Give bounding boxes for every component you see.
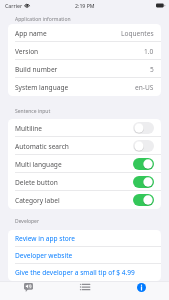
staticText: Developer	[15, 218, 40, 225]
button[interactable]	[133, 122, 154, 134]
button[interactable]	[133, 194, 154, 206]
staticText: Carrier	[5, 2, 23, 9]
button[interactable]	[133, 158, 154, 170]
staticText: 5	[150, 65, 154, 74]
staticText: System language	[15, 83, 69, 92]
button[interactable]: Version	[8, 42, 161, 60]
staticText: Category label	[15, 196, 60, 205]
staticText: Sentence input	[15, 108, 51, 115]
staticText: Developer website	[15, 251, 73, 260]
button[interactable]	[133, 176, 154, 188]
staticText: Review in app store	[15, 234, 76, 243]
staticText: Version	[15, 47, 39, 56]
staticText: Multiline	[15, 124, 43, 133]
staticText: Automatic search	[15, 142, 69, 151]
button[interactable]: Give the developer a small tip of $ 4.99	[8, 264, 161, 281]
button[interactable]: Multiline	[8, 119, 161, 137]
staticText: Delete button	[15, 178, 58, 187]
button[interactable]: Developer website	[8, 247, 161, 264]
button[interactable]	[133, 140, 154, 152]
button[interactable]: Build number	[8, 60, 161, 78]
button[interactable]: Review in app store	[8, 230, 161, 247]
staticText: 1.0	[144, 47, 154, 56]
button[interactable]: Automatic search	[8, 137, 161, 155]
staticText: 2:19 PM	[75, 2, 95, 9]
staticText: Multi language	[15, 160, 62, 169]
staticText: Application information	[15, 16, 71, 23]
staticText: Loquentes	[121, 29, 154, 38]
button[interactable]: Settings	[113, 282, 169, 300]
button[interactable]: System language	[8, 78, 161, 96]
staticText: Build number	[15, 65, 58, 74]
staticText: Give the developer a small tip of $ 4.99	[15, 268, 135, 277]
staticText: App name	[15, 29, 47, 38]
staticText: en-US	[135, 83, 154, 92]
button[interactable]: Delete button	[8, 173, 161, 191]
button[interactable]: App name	[8, 24, 161, 42]
button[interactable]: Speak	[0, 282, 57, 300]
button[interactable]: Sentence list	[57, 282, 113, 300]
button[interactable]: Category label	[8, 191, 161, 209]
button[interactable]: Multi language	[8, 155, 161, 173]
